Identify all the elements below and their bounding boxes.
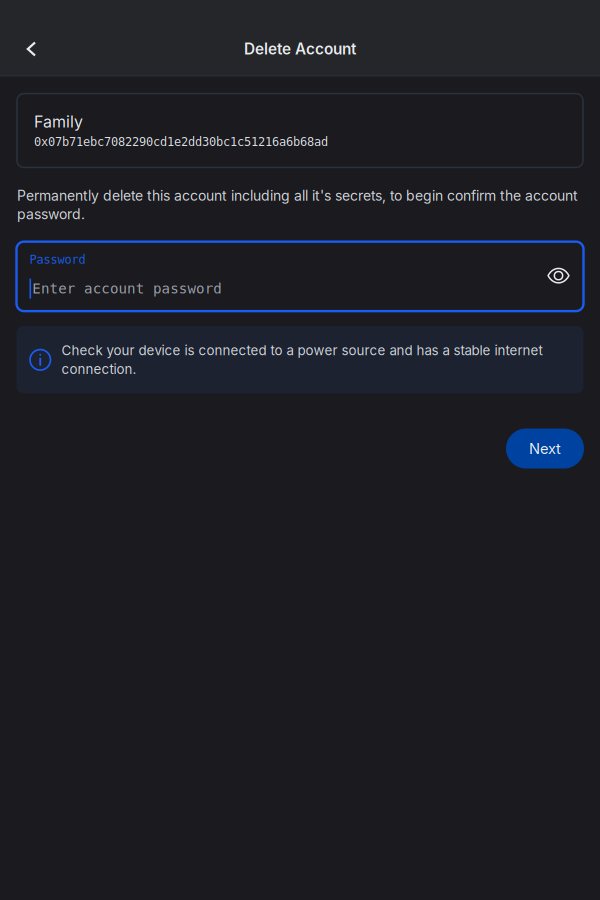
button[interactable]: Next: [506, 429, 584, 469]
staticText: 0x07b71ebc7082290cd1e2dd30bc1c51216a6b68…: [34, 135, 328, 149]
staticText: Delete Account: [244, 40, 356, 58]
staticText: Enter account password: [32, 280, 222, 297]
staticText: Family: [34, 112, 83, 131]
button[interactable]: Back: [0, 26, 55, 72]
staticText: Password: [29, 253, 85, 267]
staticText: Next: [529, 440, 561, 457]
staticText: Check your device is connected to a powe…: [61, 341, 542, 378]
button[interactable]: Show password: [546, 265, 570, 287]
staticText: Permanently delete this account includin…: [17, 186, 578, 223]
